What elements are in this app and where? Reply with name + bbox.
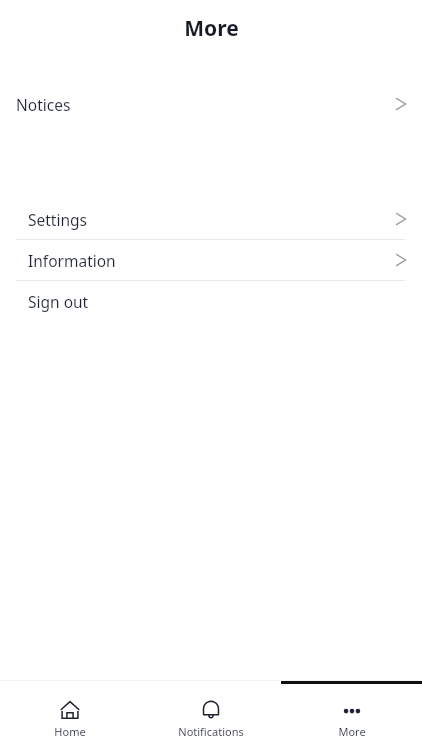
staticText: Sign out xyxy=(28,291,89,312)
staticText: Settings xyxy=(28,209,87,230)
staticText: More xyxy=(338,724,366,739)
button[interactable]: Sign out xyxy=(0,281,422,321)
other: Notifications xyxy=(200,699,222,721)
button[interactable]: Notices xyxy=(0,84,422,124)
button[interactable]: Settings xyxy=(0,199,422,239)
button[interactable]: Notifications xyxy=(140,681,281,750)
other: Home xyxy=(59,699,81,721)
other: More xyxy=(341,699,363,721)
staticText: Home xyxy=(54,724,86,739)
staticText: Notices xyxy=(16,94,71,115)
staticText: Notifications xyxy=(178,724,244,739)
button[interactable]: More xyxy=(281,681,422,750)
staticText: Information xyxy=(28,250,116,271)
staticText: More xyxy=(184,14,239,43)
button[interactable]: Information xyxy=(0,240,422,280)
button[interactable]: Home xyxy=(0,681,140,750)
